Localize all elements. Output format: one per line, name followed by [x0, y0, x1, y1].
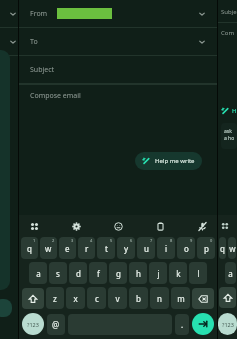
- staticText: 7: [150, 238, 153, 243]
- staticText: To: [30, 37, 38, 47]
- button[interactable]: Subject: [19, 56, 217, 83]
- staticText: q: [27, 243, 32, 254]
- staticText: 1: [33, 238, 36, 243]
- button[interactable]: y: [117, 237, 135, 259]
- button[interactable]: Help me write: [135, 152, 202, 170]
- staticText: 9: [190, 238, 193, 243]
- staticText: e: [65, 243, 70, 254]
- staticText: s: [56, 268, 60, 279]
- button[interactable]: a: [225, 262, 236, 284]
- staticText: l: [197, 268, 200, 279]
- button[interactable]: p: [197, 237, 215, 259]
- staticText: ask: [224, 128, 232, 135]
- staticText: Compo: [221, 29, 237, 37]
- staticText: 8: [170, 238, 173, 243]
- staticText: a: [36, 268, 41, 279]
- button[interactable]: Shift: [22, 288, 44, 309]
- staticText: f: [97, 268, 100, 279]
- button[interactable]: Shift: [219, 287, 236, 308]
- button[interactable]: j: [149, 262, 167, 284]
- staticText: H: [232, 107, 237, 115]
- button[interactable]: Apps: [27, 219, 41, 233]
- staticText: a ho: [224, 135, 235, 142]
- staticText: 4: [90, 238, 93, 243]
- staticText: 0: [210, 238, 213, 243]
- staticText: .: [181, 319, 184, 330]
- button[interactable]: s: [49, 262, 67, 284]
- staticText: c: [95, 293, 99, 304]
- button[interactable]: Clipboard: [153, 219, 167, 233]
- staticText: v: [115, 293, 120, 304]
- button[interactable]: m: [171, 287, 190, 309]
- button[interactable]: q: [219, 237, 226, 259]
- staticText: j: [157, 268, 160, 279]
- staticText: 5: [110, 238, 113, 243]
- button[interactable]: Backspace: [192, 288, 214, 309]
- button[interactable]: q: [21, 237, 38, 259]
- staticText: n: [157, 293, 162, 304]
- staticText: ?123: [27, 321, 39, 328]
- staticText: a: [228, 268, 233, 279]
- staticText: 3: [71, 238, 74, 243]
- staticText: m: [177, 293, 185, 304]
- button[interactable]: ?123: [22, 313, 44, 335]
- button[interactable]: o: [177, 237, 195, 259]
- button[interactable]: c: [87, 287, 106, 309]
- staticText: t: [105, 243, 108, 254]
- staticText: z: [53, 293, 57, 304]
- staticText: r: [85, 243, 89, 254]
- button[interactable]: Emoji: [111, 219, 125, 233]
- button[interactable]: Send: [192, 313, 214, 335]
- staticText: o: [184, 243, 189, 254]
- staticText: From: [30, 9, 48, 19]
- button[interactable]: x: [66, 287, 85, 309]
- button[interactable]: w: [40, 237, 57, 259]
- button[interactable]: From: [19, 0, 217, 27]
- button[interactable]: h: [129, 262, 147, 284]
- button[interactable]: r: [78, 237, 95, 259]
- button[interactable]: t: [97, 237, 115, 259]
- button[interactable]: Settings: [69, 219, 83, 233]
- button[interactable]: w: [228, 237, 236, 259]
- staticText: p: [204, 243, 209, 254]
- staticText: u: [144, 243, 149, 254]
- button[interactable]: g: [109, 262, 127, 284]
- button[interactable]: v: [108, 287, 127, 309]
- staticText: k: [176, 268, 181, 279]
- staticText: h: [136, 268, 141, 279]
- staticText: y: [124, 243, 129, 254]
- staticText: Compose email: [30, 91, 81, 101]
- button[interactable]: @: [47, 314, 65, 335]
- staticText: w: [45, 243, 52, 254]
- button[interactable]: Mic off: [195, 219, 209, 233]
- staticText: 2: [52, 238, 55, 243]
- staticText: i: [165, 243, 168, 254]
- button[interactable]: k: [169, 262, 187, 284]
- staticText: ?123: [222, 321, 234, 328]
- button[interactable]: To: [19, 28, 217, 55]
- button[interactable]: n: [150, 287, 169, 309]
- button[interactable]: e: [59, 237, 76, 259]
- staticText: q: [220, 243, 225, 254]
- staticText: b: [136, 293, 141, 304]
- button[interactable]: f: [89, 262, 107, 284]
- button[interactable]: d: [69, 262, 87, 284]
- button[interactable]: u: [137, 237, 155, 259]
- staticText: Subject: [30, 65, 55, 75]
- button[interactable]: a: [29, 262, 47, 284]
- staticText: Help me write: [155, 157, 195, 165]
- staticText: d: [76, 268, 81, 279]
- button[interactable]: b: [129, 287, 148, 309]
- staticText: w: [229, 243, 236, 254]
- staticText: g: [116, 268, 121, 279]
- staticText: 6: [130, 238, 133, 243]
- staticText: x: [73, 293, 78, 304]
- button[interactable]: l: [189, 262, 207, 284]
- button[interactable]: z: [46, 287, 64, 309]
- staticText: Subject: [221, 8, 237, 16]
- button[interactable]: .: [175, 314, 189, 335]
- button[interactable]: i: [157, 237, 175, 259]
- staticText: @: [52, 319, 60, 330]
